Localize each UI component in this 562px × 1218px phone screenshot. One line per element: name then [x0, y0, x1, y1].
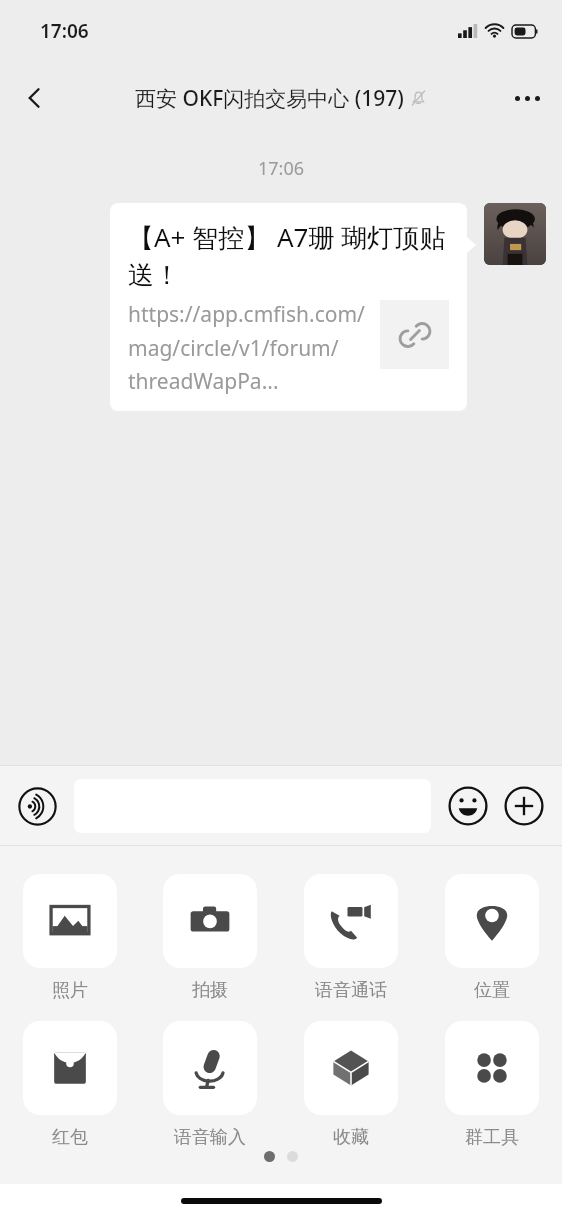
- staticText: 语音输入: [174, 1126, 246, 1149]
- staticText: 【A+ 智控】 A7珊 瑚灯顶贴送！: [128, 219, 449, 292]
- staticText: 17:06: [40, 18, 89, 44]
- staticText: 收藏: [333, 1126, 369, 1149]
- button[interactable]: Voice input: [17, 786, 57, 826]
- button[interactable]: 语音输入: [140, 1021, 280, 1149]
- button[interactable]: 【A+ 智控】 A7珊 瑚灯顶贴送！: [110, 203, 467, 411]
- button[interactable]: 收藏: [280, 1021, 421, 1149]
- button[interactable]: More: [503, 785, 545, 827]
- button[interactable]: More options: [500, 71, 554, 125]
- staticText: 语音通话: [315, 979, 387, 1002]
- staticText: 西安 OKF闪拍交易中心 (197): [135, 84, 404, 113]
- button[interactable]: Emoji: [447, 785, 489, 827]
- button[interactable]: 红包: [0, 1021, 140, 1149]
- button[interactable]: 位置: [421, 874, 562, 1002]
- button[interactable]: 语音通话: [280, 874, 421, 1002]
- staticText: 群工具: [465, 1126, 519, 1149]
- button[interactable]: 照片: [0, 874, 140, 1002]
- button[interactable]: 群工具: [421, 1021, 562, 1149]
- staticText: 红包: [52, 1126, 88, 1149]
- staticText: https://app.cmfish.com/mag/circle/v1/for…: [128, 300, 368, 395]
- staticText: 17:06: [258, 156, 305, 181]
- staticText: 拍摄: [192, 979, 228, 1002]
- button[interactable]: Back: [8, 71, 62, 125]
- button[interactable]: 拍摄: [140, 874, 280, 1002]
- button[interactable]: Avatar: [484, 203, 546, 265]
- staticText: 位置: [474, 979, 510, 1002]
- staticText: 照片: [52, 979, 88, 1002]
